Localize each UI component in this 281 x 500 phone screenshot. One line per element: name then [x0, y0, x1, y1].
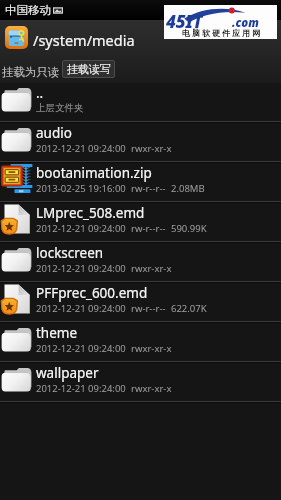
staticText: /system/media — [33, 30, 135, 50]
staticText: 2012-12-21 09:24:00 — [36, 342, 126, 355]
button[interactable]: theme — [0, 323, 281, 361]
staticText: 电脑软硬件应用网 — [181, 28, 261, 38]
button[interactable]: .. — [0, 83, 281, 121]
button[interactable]: LMprec_508.emd — [0, 203, 281, 241]
staticText: 中国移动 — [5, 3, 51, 17]
staticText: 上层文件夹 — [36, 102, 84, 114]
staticText: bootanimation.zip — [36, 164, 152, 182]
staticText: 2013-02-25 19:16:00 — [36, 182, 126, 195]
staticText: .. — [36, 84, 44, 102]
staticText: rwxr-xr-x — [131, 382, 172, 395]
staticText: rw-r--r-- — [131, 302, 166, 315]
staticText: audio — [36, 124, 72, 142]
staticText: rwxr-xr-x — [131, 342, 172, 355]
staticText: wallpaper — [36, 364, 99, 382]
staticText: 挂载读写 — [67, 62, 111, 76]
staticText: LMprec_508.emd — [36, 204, 145, 222]
staticText: rw-r--r-- — [131, 222, 166, 235]
staticText: 2012-12-21 09:24:00 — [36, 302, 126, 315]
staticText: 622.07K — [171, 302, 207, 315]
staticText: PFFprec_600.emd — [36, 284, 148, 302]
staticText: 2012-12-21 09:24:00 — [36, 222, 126, 235]
staticText: rw-r--r-- — [131, 182, 166, 195]
button[interactable]: 挂载读写 — [62, 60, 115, 78]
staticText: 2012-12-21 09:24:00 — [36, 262, 126, 275]
button[interactable]: lockscreen — [0, 243, 281, 281]
other: Root explorer — [5, 26, 28, 49]
staticText: 590.99K — [171, 222, 207, 235]
staticText: 挂载为只读 — [2, 65, 60, 79]
staticText: theme — [36, 324, 78, 342]
staticText: .com — [232, 15, 259, 31]
button[interactable]: audio — [0, 123, 281, 161]
staticText: lockscreen — [36, 244, 104, 262]
staticText: 2.08MB — [171, 182, 205, 195]
button[interactable]: 挂载为只读 — [0, 61, 62, 83]
staticText: rwxr-xr-x — [131, 142, 172, 155]
button[interactable]: PFFprec_600.emd — [0, 283, 281, 321]
staticText: 2012-12-21 09:24:00 — [36, 382, 126, 395]
staticText: 2012-12-21 09:24:00 — [36, 142, 126, 155]
button[interactable]: bootanimation.zip — [0, 163, 281, 201]
staticText: rwxr-xr-x — [131, 262, 172, 275]
staticText: 45IT — [166, 10, 203, 33]
button[interactable]: wallpaper — [0, 363, 281, 401]
